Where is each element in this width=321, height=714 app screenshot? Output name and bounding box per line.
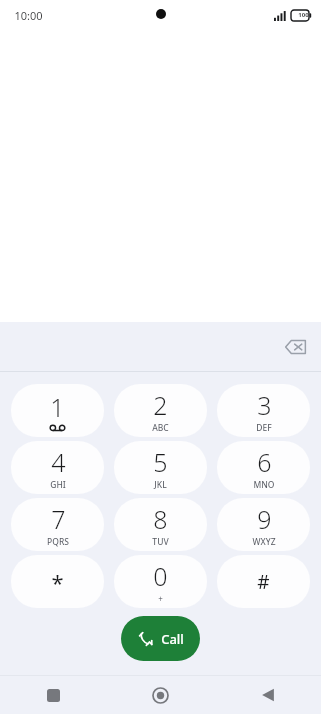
staticText: ABC xyxy=(152,422,169,434)
staticText: 0 xyxy=(153,559,168,593)
button[interactable]: 9 xyxy=(217,498,310,551)
button[interactable]: 6 xyxy=(217,441,310,494)
staticText: # xyxy=(257,569,270,595)
button[interactable]: 4 xyxy=(11,441,104,494)
staticText: Call xyxy=(161,630,184,648)
button[interactable]: Backspace xyxy=(278,330,312,364)
staticText: 1 xyxy=(50,390,65,424)
staticText: 7 xyxy=(51,502,66,536)
staticText: MNO xyxy=(253,479,275,491)
button[interactable]: 0 xyxy=(114,555,207,608)
button[interactable]: 2 xyxy=(114,384,207,437)
staticText: 100 xyxy=(298,11,309,19)
button[interactable]: Back xyxy=(214,676,321,714)
button[interactable]: 7 xyxy=(11,498,104,551)
staticText: DEF xyxy=(256,422,272,434)
staticText: 2 xyxy=(153,388,168,422)
staticText: TUV xyxy=(152,536,169,548)
button[interactable]: Home xyxy=(107,676,214,714)
button[interactable]: Call xyxy=(121,616,200,661)
button[interactable]: 1 xyxy=(11,384,104,437)
button[interactable]: Recents xyxy=(0,676,107,714)
staticText: GHI xyxy=(50,479,66,491)
staticText: PQRS xyxy=(47,536,69,548)
staticText: + xyxy=(158,593,163,604)
button[interactable]: * xyxy=(11,555,104,608)
button[interactable]: 8 xyxy=(114,498,207,551)
staticText: 10:00 xyxy=(14,8,43,23)
staticText: JKL xyxy=(154,479,167,491)
button[interactable]: 5 xyxy=(114,441,207,494)
button[interactable]: # xyxy=(217,555,310,608)
staticText: 5 xyxy=(153,445,168,479)
staticText: * xyxy=(51,567,64,597)
staticText: 6 xyxy=(257,445,272,479)
button[interactable]: 3 xyxy=(217,384,310,437)
staticText: WXYZ xyxy=(252,536,276,548)
staticText: 4 xyxy=(51,445,66,479)
staticText: 8 xyxy=(153,502,168,536)
staticText: 9 xyxy=(257,502,272,536)
staticText: 3 xyxy=(257,388,272,422)
